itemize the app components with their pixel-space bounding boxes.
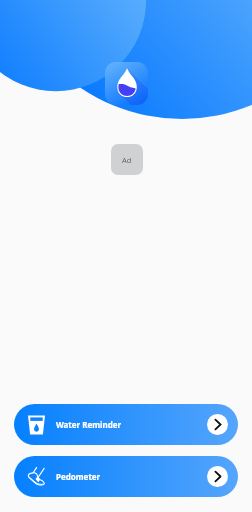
button[interactable]: Ad <box>111 144 143 175</box>
button[interactable]: Water Reminder <box>14 404 238 445</box>
other: Open Pedometer <box>207 466 228 487</box>
staticText: Water Reminder <box>56 419 122 430</box>
staticText: Pedometer <box>56 471 101 482</box>
staticText: Ad <box>122 155 132 165</box>
other: Open Water Reminder <box>207 414 228 435</box>
button[interactable]: Pedometer <box>14 456 238 497</box>
